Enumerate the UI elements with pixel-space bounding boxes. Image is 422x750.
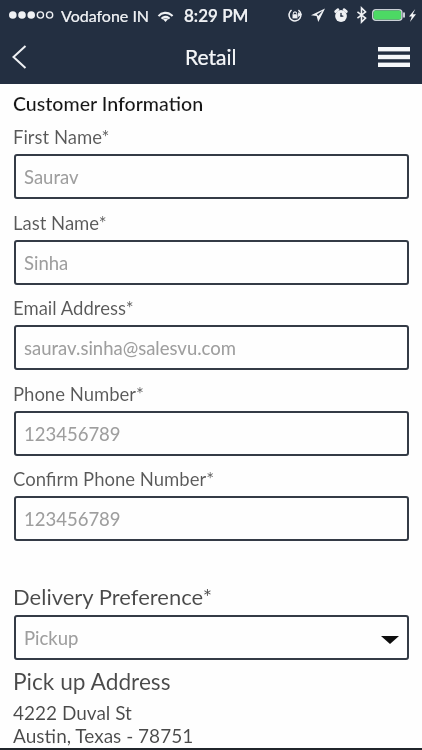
button[interactable]: Sinha bbox=[14, 240, 409, 285]
button[interactable]: 123456789 bbox=[14, 496, 409, 541]
staticText: Email Address* bbox=[13, 297, 134, 319]
staticText: Pickup bbox=[24, 627, 79, 649]
staticText: 123456789 bbox=[24, 508, 121, 530]
staticText: Saurav bbox=[24, 166, 79, 188]
staticText: 8:29 PM bbox=[184, 5, 249, 25]
staticText: saurav.sinha@salesvu.com bbox=[24, 337, 236, 359]
staticText: Phone Number* bbox=[13, 383, 144, 405]
staticText: Last Name* bbox=[13, 212, 107, 234]
staticText: First Name* bbox=[13, 126, 110, 148]
staticText: Austin, Texas - 78751 bbox=[13, 724, 194, 747]
staticText: Confirm Phone Number* bbox=[13, 468, 215, 490]
button[interactable]: Delivery preference dropdown bbox=[14, 615, 409, 660]
staticText: 123456789 bbox=[24, 423, 121, 445]
staticText: 4222 Duval St bbox=[13, 701, 132, 724]
button[interactable]: 123456789 bbox=[14, 411, 409, 456]
staticText: Customer Information bbox=[13, 92, 204, 115]
button[interactable]: Menu bbox=[366, 30, 422, 84]
staticText: Delivery Preference* bbox=[13, 583, 212, 609]
button[interactable]: Back bbox=[0, 30, 38, 84]
button[interactable]: Saurav bbox=[14, 154, 409, 199]
staticText: Vodafone IN bbox=[61, 6, 150, 25]
staticText: Pick up Address bbox=[13, 668, 171, 695]
staticText: Sinha bbox=[24, 252, 69, 274]
button[interactable]: saurav.sinha@salesvu.com bbox=[14, 325, 409, 370]
staticText: Retail bbox=[185, 44, 237, 69]
